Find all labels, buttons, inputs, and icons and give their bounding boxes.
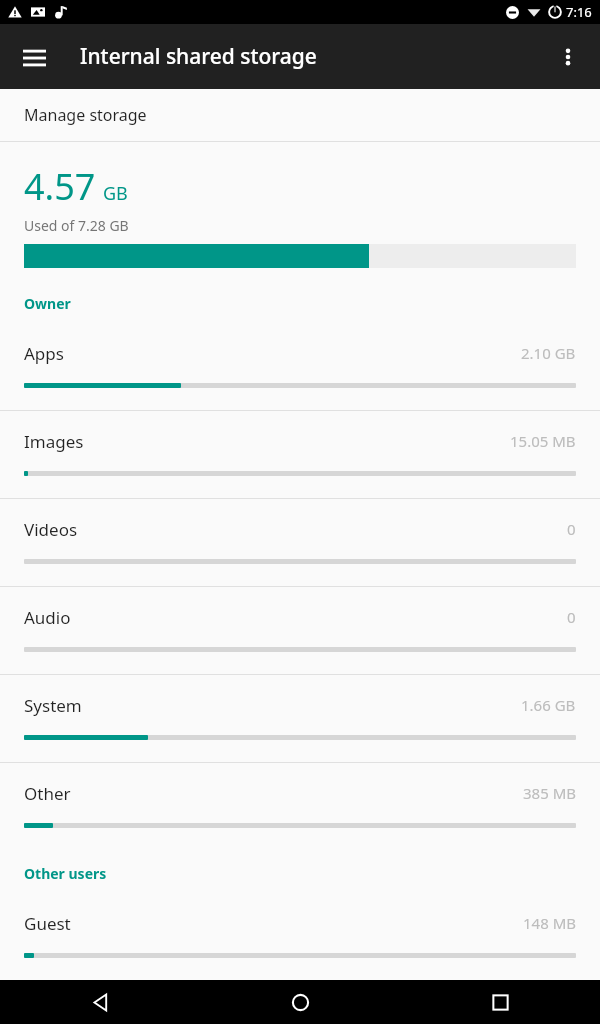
staticText: Guest — [24, 912, 71, 935]
staticText: System — [24, 694, 82, 717]
button[interactable]: More options — [544, 33, 592, 81]
staticText: Videos — [24, 518, 78, 541]
staticText: GB — [103, 181, 128, 206]
button[interactable]: Audio — [0, 587, 600, 674]
button[interactable]: Open navigation drawer — [10, 33, 58, 81]
staticText: 4.57 — [24, 162, 96, 211]
button[interactable]: Apps — [0, 323, 600, 410]
staticText: 7:16 — [566, 3, 592, 21]
button[interactable]: Home — [200, 980, 400, 1024]
button[interactable]: Images — [0, 411, 600, 498]
staticText: 148 MB — [523, 913, 576, 933]
button[interactable]: System — [0, 675, 600, 762]
staticText: 0 — [567, 607, 576, 627]
button[interactable]: Recent apps — [400, 980, 600, 1024]
button[interactable]: Guest — [0, 893, 600, 980]
staticText: 1.66 GB — [521, 695, 576, 715]
button[interactable]: Other — [0, 763, 600, 850]
staticText: 15.05 MB — [510, 431, 576, 451]
button[interactable]: Back — [0, 980, 200, 1024]
staticText: Other — [24, 782, 71, 805]
button[interactable]: Manage storage — [0, 89, 600, 141]
staticText: 2.10 GB — [521, 343, 576, 363]
staticText: Internal shared storage — [80, 42, 317, 71]
staticText: Owner — [24, 294, 71, 313]
staticText: 0 — [567, 519, 576, 539]
staticText: 385 MB — [523, 783, 576, 803]
button[interactable]: Videos — [0, 499, 600, 586]
staticText: Audio — [24, 606, 71, 629]
staticText: Manage storage — [24, 104, 147, 126]
staticText: Other users — [24, 864, 107, 883]
staticText: Apps — [24, 342, 64, 365]
staticText: Used of 7.28 GB — [24, 216, 129, 235]
staticText: Images — [24, 430, 84, 453]
